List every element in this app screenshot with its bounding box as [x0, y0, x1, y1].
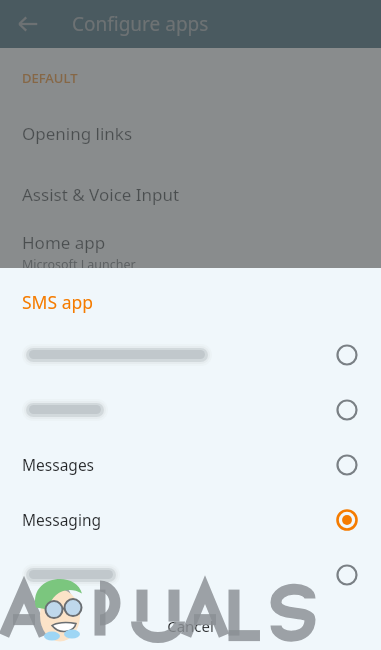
button[interactable]: Opening links	[0, 109, 381, 158]
staticText: Home app	[22, 231, 106, 254]
button[interactable]: Assist & Voice Input	[0, 170, 381, 219]
staticText: Assist & Voice Input	[22, 183, 180, 206]
staticText: Messaging	[22, 509, 101, 530]
staticText: Configure apps	[72, 11, 209, 37]
button[interactable]: Messages	[0, 437, 381, 492]
staticText: SMS app	[22, 290, 93, 314]
staticText: Microsoft Launcher	[22, 256, 136, 273]
button[interactable]: Home app	[0, 231, 381, 273]
button[interactable]	[0, 547, 381, 602]
button[interactable]	[0, 382, 381, 437]
staticText: Opening links	[22, 122, 133, 145]
button[interactable]: Messaging	[0, 492, 381, 547]
staticText: Cancel	[167, 616, 214, 636]
staticText: Messages	[22, 454, 95, 475]
button[interactable]: Back	[8, 4, 48, 44]
button[interactable]	[0, 327, 381, 382]
staticText: DEFAULT	[22, 69, 78, 87]
button[interactable]: Cancel	[0, 602, 381, 650]
